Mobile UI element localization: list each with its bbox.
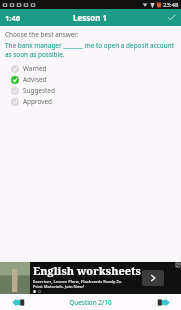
button[interactable]: Close ad	[176, 263, 180, 267]
staticText: Advised	[23, 75, 47, 84]
button[interactable]: Open advertisement	[142, 270, 164, 286]
button[interactable]: Suggested	[5, 85, 175, 96]
staticText: 23:48	[163, 1, 179, 9]
staticText: Print Materials. Join Now!	[33, 284, 84, 289]
button[interactable]: Approved	[5, 96, 175, 107]
staticText: Approved	[23, 97, 52, 106]
staticText: English worksheets	[33, 263, 141, 278]
button[interactable]: Advertisement: English worksheets	[0, 262, 181, 294]
staticText: Question 2/10	[69, 298, 112, 307]
staticText: Lesson 1	[73, 12, 108, 23]
staticText: The bank manager _______ me to open a de…	[5, 41, 175, 59]
staticText: Warned	[23, 64, 47, 73]
button[interactable]: Previous question	[8, 295, 28, 309]
staticText: 1:46	[5, 13, 20, 23]
staticText: Choose the best answer:	[5, 30, 79, 39]
button[interactable]: Next question	[153, 295, 173, 309]
button[interactable]: Advised	[5, 74, 175, 85]
button[interactable]: Submit answer	[161, 9, 181, 26]
staticText: Exercises, Lesson Plans, Flashcards Read…	[33, 279, 123, 284]
staticText: Suggested	[23, 86, 55, 95]
button[interactable]: Warned	[5, 63, 175, 74]
